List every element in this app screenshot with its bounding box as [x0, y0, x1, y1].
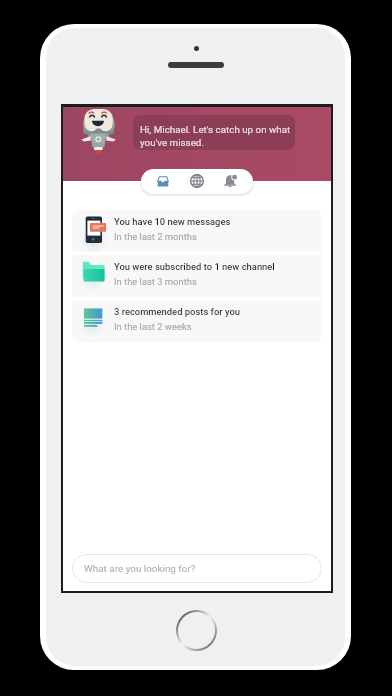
button[interactable]: Inbox [151, 169, 175, 193]
button[interactable]: What are you looking for? [72, 554, 322, 583]
staticText: In the last 2 months [114, 231, 197, 242]
staticText: In the last 3 months [114, 276, 197, 287]
button[interactable]: Notifications [219, 169, 243, 193]
button[interactable]: Hi, Michael. Let's catch up on what you'… [133, 115, 295, 150]
button[interactable]: You were subscribed to 1 new channel [72, 255, 321, 297]
staticText: You have 10 new messages [114, 216, 231, 227]
button[interactable]: Explore [185, 169, 209, 193]
staticText: What are you looking for? [84, 563, 196, 575]
button[interactable]: You have 10 new messages [72, 210, 321, 252]
staticText: Hi, Michael. Let's catch up on what you'… [140, 124, 292, 148]
button[interactable]: Home [176, 610, 217, 651]
staticText: 3 recommended posts for you [114, 306, 240, 317]
button[interactable]: 3 recommended posts for you [72, 300, 321, 342]
staticText: You were subscribed to 1 new channel [114, 261, 275, 272]
staticText: In the last 2 weeks [114, 321, 192, 332]
